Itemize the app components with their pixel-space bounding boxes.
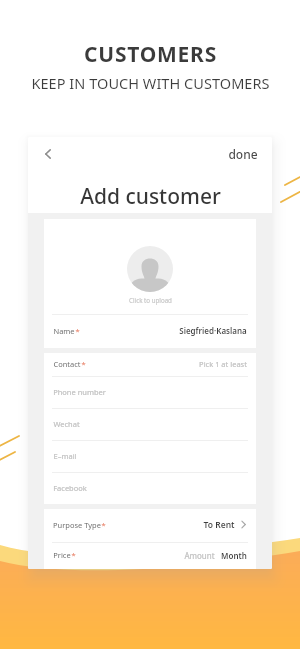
button[interactable]: Back: [35, 141, 61, 167]
staticText: *: [75, 326, 80, 336]
staticText: Name: [53, 326, 75, 336]
staticText: E–mail: [53, 451, 77, 461]
button[interactable]: Purpose Type: [44, 509, 256, 542]
staticText: *: [101, 520, 106, 530]
staticText: Facebook: [53, 483, 87, 493]
button[interactable]: Click to upload photo: [127, 246, 173, 292]
staticText: Click to upload: [129, 296, 172, 304]
staticText: Phone number: [53, 387, 106, 397]
staticText: *: [71, 550, 76, 560]
staticText: done: [228, 146, 258, 162]
button[interactable]: E–mail: [44, 441, 256, 472]
staticText: Siegfried·Kaslana: [179, 325, 247, 336]
staticText: Amount: [184, 550, 215, 561]
button[interactable]: done: [216, 137, 272, 170]
staticText: CUSTOMERS: [84, 40, 217, 69]
staticText: Pick 1 at least: [199, 359, 247, 369]
button[interactable]: Name: [44, 315, 256, 348]
staticText: Purpose Type: [53, 520, 101, 530]
staticText: Contact: [53, 359, 81, 369]
button[interactable]: Facebook: [44, 473, 256, 504]
button[interactable]: Contact: [44, 353, 256, 376]
staticText: Price: [53, 550, 71, 560]
staticText: Wechat: [53, 419, 80, 429]
button[interactable]: Price: [44, 543, 256, 569]
staticText: KEEP IN TOUCH WITH CUSTOMERS: [31, 73, 270, 93]
button[interactable]: Phone number: [44, 377, 256, 408]
staticText: Month: [221, 550, 247, 561]
staticText: Add customer: [80, 182, 221, 211]
button[interactable]: Wechat: [44, 409, 256, 440]
staticText: *: [81, 359, 86, 369]
staticText: To Rent: [203, 519, 235, 531]
